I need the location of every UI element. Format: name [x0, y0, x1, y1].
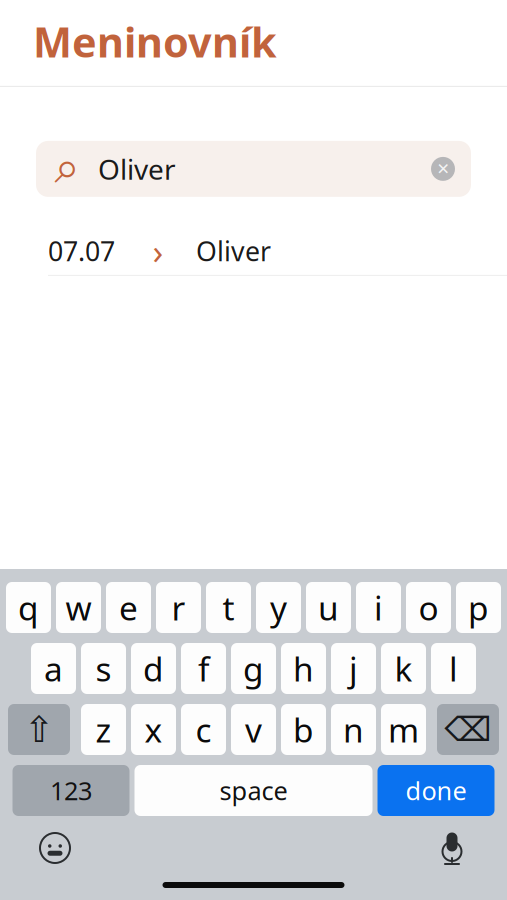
staticText: k: [394, 646, 412, 691]
staticText: h: [293, 646, 314, 691]
staticText: ›: [152, 228, 163, 274]
staticText: q: [18, 585, 39, 630]
staticText: f: [198, 646, 209, 691]
staticText: ⇧: [24, 709, 54, 750]
staticText: Oliver: [196, 233, 271, 269]
staticText: a: [44, 646, 63, 691]
button[interactable]: Search: [50, 143, 84, 195]
button[interactable]: space: [134, 765, 372, 816]
button[interactable]: b: [281, 704, 326, 755]
staticText: s: [95, 646, 111, 691]
button[interactable]: d: [131, 643, 176, 694]
staticText: i: [374, 585, 383, 630]
staticText: t: [222, 585, 234, 630]
button[interactable]: x: [131, 704, 176, 755]
button[interactable]: v: [231, 704, 276, 755]
staticText: l: [449, 646, 458, 691]
button[interactable]: r: [156, 582, 201, 633]
button[interactable]: j: [331, 643, 376, 694]
staticText: b: [293, 707, 314, 752]
button[interactable]: w: [56, 582, 101, 633]
staticText: r: [171, 585, 185, 630]
staticText: y: [270, 585, 287, 630]
button[interactable]: i: [356, 582, 401, 633]
staticText: j: [349, 646, 358, 691]
button[interactable]: 07.07: [0, 227, 507, 276]
button[interactable]: e: [106, 582, 151, 633]
button[interactable]: Delete: [437, 704, 499, 755]
button[interactable]: h: [281, 643, 326, 694]
button[interactable]: o: [406, 582, 451, 633]
staticText: 07.07: [48, 233, 115, 269]
button[interactable]: k: [381, 643, 426, 694]
button[interactable]: s: [81, 643, 126, 694]
staticText: x: [144, 707, 162, 752]
staticText: e: [119, 585, 138, 630]
staticText: done: [405, 774, 466, 807]
staticText: m: [388, 707, 419, 752]
button[interactable]: Emoji keyboard: [28, 824, 82, 872]
staticText: z: [95, 707, 111, 752]
staticText: ⌫: [444, 711, 491, 748]
button[interactable]: y: [256, 582, 301, 633]
staticText: o: [418, 585, 438, 630]
staticText: n: [343, 707, 364, 752]
staticText: w: [65, 585, 91, 630]
staticText: d: [143, 646, 164, 691]
staticText: Meninovník: [33, 14, 277, 69]
button[interactable]: q: [6, 582, 51, 633]
staticText: 123: [50, 774, 92, 807]
staticText: g: [243, 646, 264, 691]
staticText: Oliver: [98, 150, 176, 187]
staticText: ⌕: [54, 147, 79, 191]
button[interactable]: n: [331, 704, 376, 755]
button[interactable]: done: [377, 765, 494, 816]
button[interactable]: m: [381, 704, 426, 755]
button[interactable]: c: [181, 704, 226, 755]
staticText: p: [468, 585, 489, 630]
button[interactable]: Shift: [8, 704, 70, 755]
staticText: c: [195, 707, 211, 752]
staticText: v: [245, 707, 262, 752]
button[interactable]: a: [31, 643, 76, 694]
staticText: u: [318, 585, 339, 630]
staticText: space: [219, 774, 287, 807]
button[interactable]: z: [81, 704, 126, 755]
button[interactable]: g: [231, 643, 276, 694]
button[interactable]: l: [431, 643, 476, 694]
staticText: ✕: [436, 160, 449, 178]
button[interactable]: 123: [12, 765, 129, 816]
button[interactable]: f: [181, 643, 226, 694]
button[interactable]: u: [306, 582, 351, 633]
button[interactable]: Dictate: [425, 824, 479, 872]
button[interactable]: p: [456, 582, 501, 633]
button[interactable]: Clear text: [419, 143, 467, 195]
button[interactable]: t: [206, 582, 251, 633]
